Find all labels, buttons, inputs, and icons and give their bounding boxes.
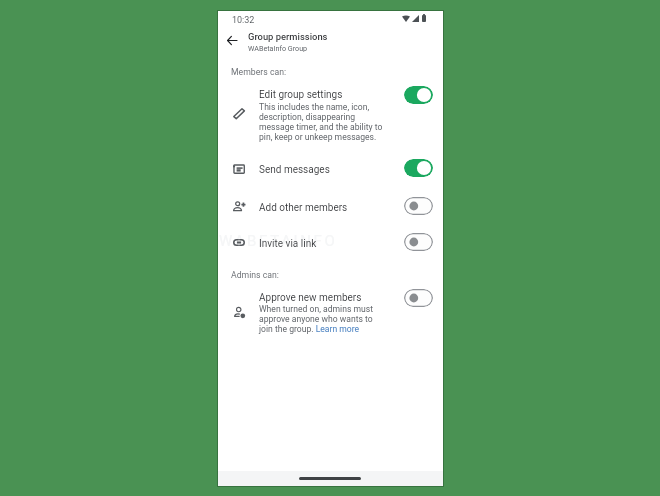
staticText: Members can: — [231, 67, 287, 77]
button[interactable]: Turn off — [404, 159, 433, 177]
button[interactable] — [218, 284, 443, 338]
staticText: description, disappearing — [259, 112, 356, 122]
button[interactable]: Back — [220, 28, 244, 52]
staticText: Add other members — [259, 202, 348, 214]
staticText: WABetaInfo Group — [248, 44, 308, 52]
staticText: Invite via link — [259, 238, 317, 250]
staticText: This includes the name, icon, — [259, 102, 370, 112]
button[interactable] — [218, 225, 443, 260]
button[interactable]: Turn on — [404, 197, 433, 215]
button[interactable] — [218, 151, 443, 186]
button[interactable]: Turn off — [404, 86, 433, 104]
staticText: Admins can: — [231, 270, 279, 280]
staticText: WABETAINFO — [219, 232, 338, 250]
staticText: Approve new members — [259, 292, 362, 304]
staticText: Edit group settings — [259, 89, 343, 101]
staticText: join the group. Learn more — [259, 324, 360, 334]
staticText: Group permissions — [248, 31, 328, 42]
button[interactable]: Turn on — [404, 233, 433, 251]
button[interactable]: Turn on — [404, 289, 433, 307]
staticText: approve anyone who wants to — [259, 314, 373, 324]
staticText: When turned on, admins must — [259, 304, 373, 314]
button[interactable] — [218, 80, 443, 148]
staticText: Send messages — [259, 164, 330, 176]
staticText: 10:32 — [232, 15, 255, 26]
staticText: message timer, and the ability to — [259, 122, 383, 132]
staticText: pin, keep or unkeep messages. — [259, 132, 377, 142]
button[interactable] — [218, 188, 443, 223]
